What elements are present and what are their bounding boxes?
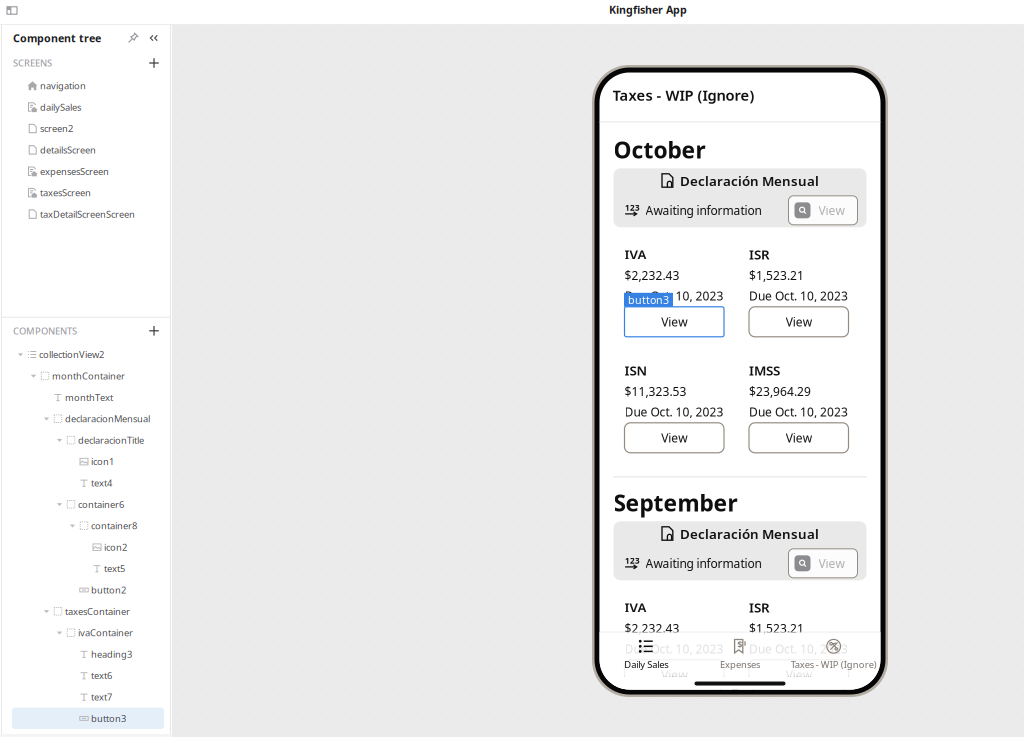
button[interactable]: heading3: [2, 643, 170, 665]
staticText: ISR: [749, 245, 770, 263]
staticText: Awaiting information: [645, 555, 761, 571]
staticText: taxDetailScreenScreen: [40, 208, 135, 220]
button[interactable]: button2: [2, 579, 170, 601]
staticText: text5: [104, 562, 125, 575]
staticText: monthContainer: [52, 370, 125, 382]
button[interactable]: container6: [2, 494, 170, 515]
button[interactable]: taxDetailScreenScreen: [2, 203, 170, 225]
staticText: View: [786, 667, 812, 683]
button[interactable]: container8: [2, 515, 170, 536]
staticText: screen2: [40, 122, 73, 135]
staticText: SCREENS: [13, 57, 52, 69]
staticText: Expenses: [720, 658, 760, 671]
staticText: View: [661, 314, 687, 330]
staticText: navigation: [40, 79, 86, 92]
staticText: $1,523.21: [749, 267, 804, 283]
button[interactable]: declaracionMensual: [2, 408, 170, 429]
button[interactable]: Add component: [147, 324, 161, 338]
button[interactable]: icon2: [2, 536, 170, 558]
staticText: $11,323.53: [624, 383, 686, 399]
button[interactable]: detailsScreen: [2, 139, 170, 161]
button[interactable]: declaracionTitle: [2, 429, 170, 451]
staticText: 123: [625, 202, 640, 213]
staticText: COMPONENTS: [13, 325, 77, 337]
staticText: $: [737, 638, 742, 650]
button[interactable]: View: [788, 549, 857, 578]
button[interactable]: dailySales: [2, 96, 170, 118]
staticText: collectionView2: [39, 348, 104, 361]
button[interactable]: text5: [2, 558, 170, 579]
staticText: $2,232.43: [624, 620, 679, 636]
staticText: Declaración Mensual: [680, 525, 819, 543]
button[interactable]: View: [624, 307, 724, 337]
button[interactable]: Toggle sidebar: [2, 0, 22, 20]
staticText: text6: [91, 669, 112, 682]
button[interactable]: taxesContainer: [2, 601, 170, 622]
staticText: View: [661, 430, 687, 446]
staticText: Declaración Mensual: [680, 172, 819, 190]
staticText: container6: [78, 498, 124, 510]
button[interactable]: View: [788, 196, 857, 225]
button[interactable]: monthContainer: [2, 365, 170, 387]
button[interactable]: text6: [2, 665, 170, 686]
staticText: October: [613, 135, 705, 165]
staticText: text7: [91, 691, 112, 703]
button[interactable]: text7: [2, 686, 170, 708]
button[interactable]: View: [749, 423, 848, 453]
staticText: $23,964.29: [749, 383, 811, 399]
button[interactable]: ivaContainer: [2, 622, 170, 643]
staticText: View: [786, 430, 812, 446]
staticText: declaracionTitle: [78, 434, 144, 446]
staticText: detailsScreen: [40, 144, 96, 156]
button[interactable]: taxesScreen: [2, 182, 170, 203]
staticText: Due Oct. 10, 2023: [624, 641, 723, 657]
staticText: expensesScreen: [40, 165, 109, 177]
staticText: container8: [91, 519, 137, 532]
staticText: ISN: [624, 361, 647, 379]
button[interactable]: Taxes - WIP (Ignore): [787, 632, 880, 676]
button[interactable]: button3: [2, 708, 170, 729]
staticText: declaracionMensual: [65, 412, 150, 425]
button[interactable]: View: [749, 660, 848, 690]
staticText: Taxes - WIP (Ignore): [612, 85, 754, 105]
staticText: button2: [91, 584, 126, 596]
button[interactable]: icon1: [2, 451, 170, 472]
button[interactable]: $: [693, 632, 787, 676]
button[interactable]: View: [624, 660, 724, 690]
staticText: ISR: [749, 598, 770, 616]
staticText: text4: [91, 477, 112, 489]
button[interactable]: expensesScreen: [2, 161, 170, 182]
staticText: button3: [628, 293, 669, 307]
staticText: View: [818, 555, 844, 571]
staticText: dailySales: [40, 101, 81, 113]
staticText: button3: [91, 712, 126, 724]
staticText: Component tree: [13, 31, 101, 45]
staticText: Due Oct. 10, 2023: [624, 288, 723, 304]
button[interactable]: View: [624, 423, 724, 453]
staticText: Due Oct. 10, 2023: [749, 404, 848, 420]
button[interactable]: navigation: [2, 75, 170, 96]
button[interactable]: Collapse panel: [147, 31, 161, 45]
staticText: ivaContainer: [78, 626, 133, 639]
staticText: Awaiting information: [645, 202, 761, 218]
button[interactable]: Add screen: [147, 56, 161, 70]
button[interactable]: monthText: [2, 387, 170, 408]
staticText: View: [818, 202, 844, 218]
staticText: Kingfisher App: [609, 2, 687, 17]
staticText: IMSS: [749, 361, 780, 379]
staticText: monthText: [65, 391, 113, 403]
staticText: Due Oct. 10, 2023: [749, 641, 848, 657]
staticText: taxesScreen: [40, 186, 91, 199]
button[interactable]: View: [749, 307, 848, 337]
button[interactable]: Daily Sales: [599, 632, 693, 676]
button[interactable]: collectionView2: [2, 344, 170, 365]
button[interactable]: Pin panel: [126, 31, 140, 45]
button[interactable]: screen2: [2, 118, 170, 139]
button[interactable]: text4: [2, 472, 170, 494]
staticText: View: [786, 314, 812, 330]
staticText: $1,523.21: [749, 620, 804, 636]
staticText: icon2: [104, 541, 127, 553]
